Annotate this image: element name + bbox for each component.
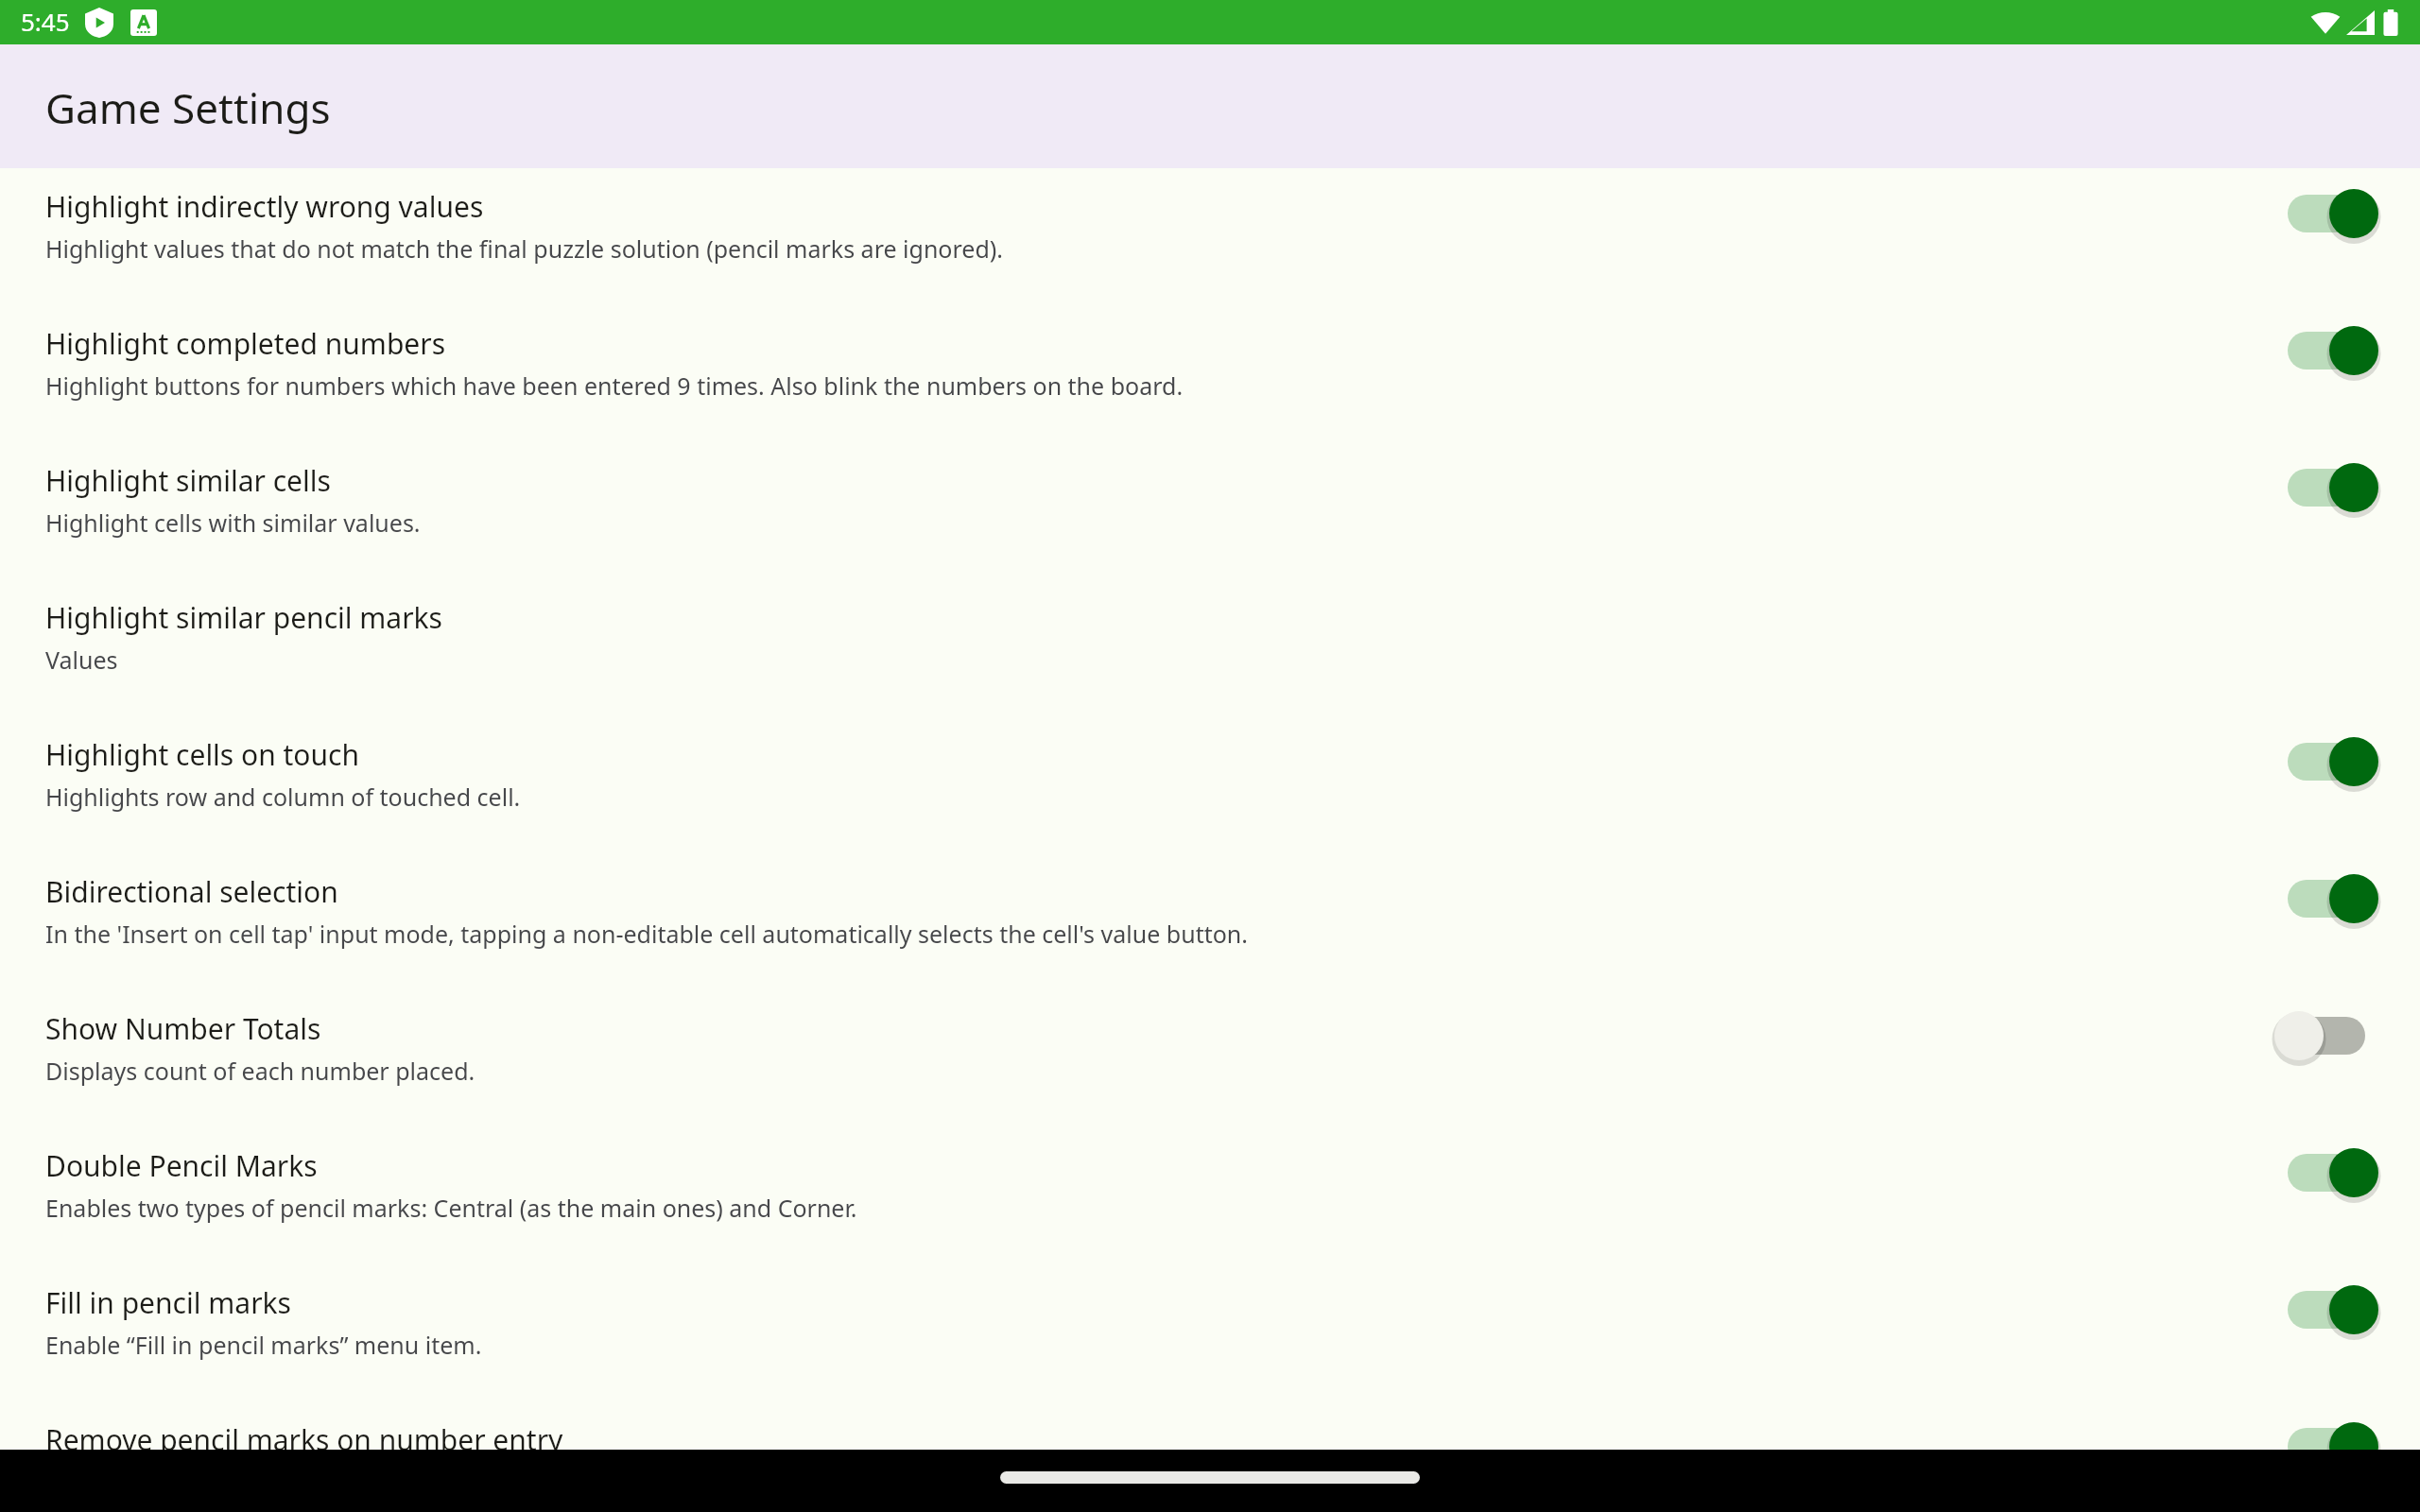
button[interactable]: Highlight similar cells [0,442,2420,579]
button[interactable]: Fill in pencil marks [2288,1264,2420,1401]
staticText: Highlight values that do not match the f… [45,232,1003,265]
staticText: Highlights row and column of touched cel… [45,781,521,813]
button[interactable]: Highlight similar pencil marks [0,579,2420,716]
button[interactable]: Highlight completed numbers [2288,305,2420,442]
staticText: Double Pencil Marks [45,1146,318,1185]
button[interactable]: Double Pencil Marks [2288,1127,2420,1264]
button[interactable]: Bidirectional selection [2288,853,2420,990]
button[interactable]: Highlight completed numbers [0,305,2420,442]
staticText: Highlight similar pencil marks [45,598,442,637]
staticText: Highlight cells on touch [45,735,359,774]
staticText: Remove pencil marks on number entry [45,1420,563,1459]
button[interactable]: Highlight cells on touch [2288,716,2420,853]
button[interactable]: Highlight cells on touch [0,716,2420,853]
staticText: Values [45,644,118,676]
button[interactable]: Show Number Totals [2288,990,2420,1127]
button[interactable]: Show Number Totals [0,990,2420,1127]
staticText: Game Settings [45,79,331,136]
staticText: Show Number Totals [45,1009,321,1048]
button[interactable]: Bidirectional selection [0,853,2420,990]
button[interactable]: Fill in pencil marks [0,1264,2420,1401]
staticText: Displays count of each number placed. [45,1055,475,1087]
button[interactable]: Highlight indirectly wrong values [0,168,2420,305]
staticText: Enables two types of pencil marks: Centr… [45,1192,857,1224]
staticText: Highlight similar cells [45,461,331,500]
staticText: Fill in pencil marks [45,1283,291,1322]
staticText: Highlight cells with similar values. [45,507,421,539]
staticText: Automatically removes pencil marks of th… [45,1466,1058,1498]
staticText: Enable “Fill in pencil marks” menu item. [45,1329,482,1361]
button[interactable]: Remove pencil marks on number entry [2288,1401,2420,1512]
staticText: Bidirectional selection [45,872,338,911]
button[interactable]: Double Pencil Marks [0,1127,2420,1264]
button[interactable]: Highlight similar cells [2288,442,2420,579]
staticText: In the 'Insert on cell tap' input mode, … [45,918,1248,950]
staticText: Highlight completed numbers [45,324,446,363]
staticText: Highlight indirectly wrong values [45,187,484,226]
button[interactable]: Remove pencil marks on number entry [0,1401,2420,1512]
staticText: 5:45 [21,5,70,38]
button[interactable]: Highlight indirectly wrong values [2288,168,2420,305]
staticText: Highlight buttons for numbers which have… [45,369,1184,402]
